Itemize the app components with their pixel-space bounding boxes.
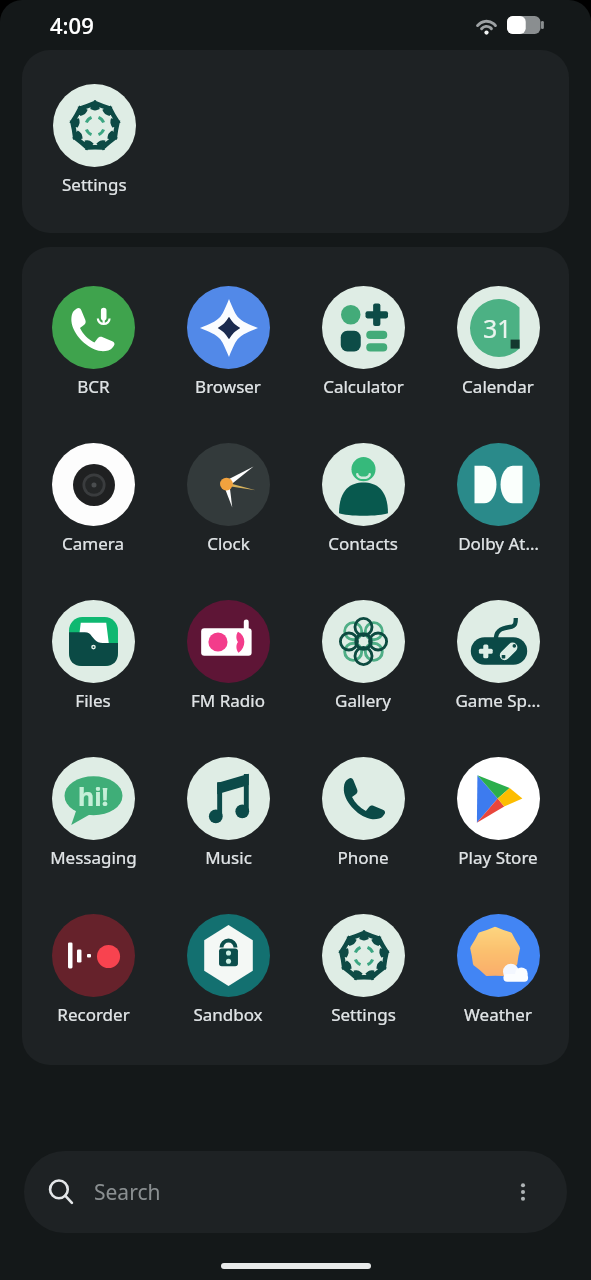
staticText: Calculator <box>323 375 404 398</box>
button[interactable]: Settings <box>299 914 427 1026</box>
staticText: Dolby At… <box>458 532 539 555</box>
button[interactable]: Files <box>29 600 157 712</box>
button[interactable]: Search <box>24 1151 567 1233</box>
button[interactable]: 31 <box>434 286 562 398</box>
staticText: Game Sp… <box>455 689 541 712</box>
staticText: Sandbox <box>193 1003 263 1026</box>
button[interactable]: BCR <box>29 286 157 398</box>
button[interactable]: FM Radio <box>164 600 292 712</box>
button[interactable]: Gallery <box>299 600 427 712</box>
staticText: Contacts <box>328 532 398 555</box>
staticText: Clock <box>207 532 250 555</box>
button[interactable]: Recorder <box>29 914 157 1026</box>
button[interactable]: hi! <box>29 757 157 869</box>
staticText: FM Radio <box>191 689 265 712</box>
button[interactable]: Camera <box>29 443 157 555</box>
button[interactable]: Browser <box>164 286 292 398</box>
staticText: Music <box>205 846 252 869</box>
button[interactable]: Sandbox <box>164 914 292 1026</box>
button[interactable]: Phone <box>299 757 427 869</box>
button[interactable]: More options <box>499 1168 547 1216</box>
button[interactable]: Contacts <box>299 443 427 555</box>
staticText: Play Store <box>458 846 538 869</box>
staticText: Weather <box>464 1003 532 1026</box>
staticText: Messaging <box>50 846 137 869</box>
staticText: 31 <box>483 311 512 345</box>
button[interactable]: Play Store <box>434 757 562 869</box>
staticText: 4:09 <box>50 10 94 40</box>
button[interactable]: Calculator <box>299 286 427 398</box>
staticText: Settings <box>331 1003 396 1026</box>
button[interactable]: Music <box>164 757 292 869</box>
staticText: Recorder <box>57 1003 130 1026</box>
staticText: Calendar <box>462 375 534 398</box>
staticText: Search <box>94 1178 161 1207</box>
button[interactable]: Game Sp… <box>434 600 562 712</box>
staticText: Browser <box>195 375 261 398</box>
staticText: BCR <box>77 375 110 398</box>
staticText: Files <box>75 689 111 712</box>
button[interactable]: Weather <box>434 914 562 1026</box>
button[interactable]: Dolby At… <box>434 443 562 555</box>
staticText: Settings <box>62 173 127 196</box>
staticText: Phone <box>337 846 389 869</box>
staticText: Camera <box>62 532 124 555</box>
staticText: hi! <box>78 779 109 813</box>
button[interactable]: Clock <box>164 443 292 555</box>
button[interactable]: Settings <box>53 84 136 196</box>
staticText: Gallery <box>335 689 391 712</box>
